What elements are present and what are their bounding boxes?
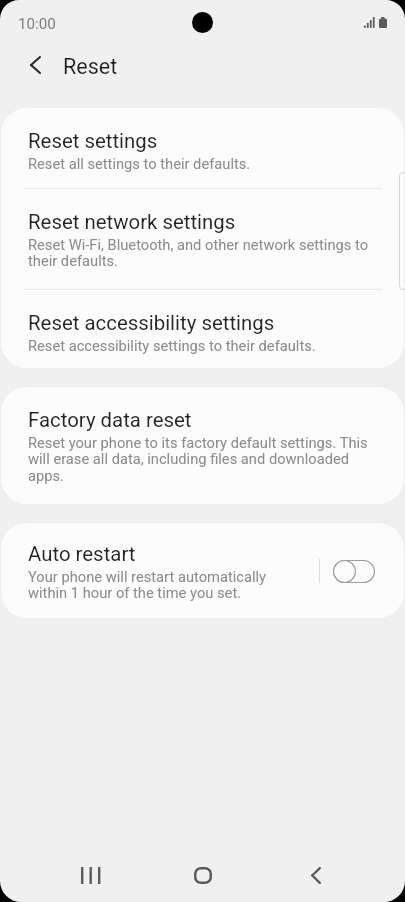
button[interactable]: Reset accessibility settings [1,290,404,368]
button[interactable]: Back [288,847,344,902]
button[interactable]: Factory data reset [1,387,404,504]
staticText: Auto restart [28,542,136,566]
staticText: Reset your phone to its factory default … [28,434,378,485]
staticText: Your phone will restart automatically wi… [28,568,294,602]
button[interactable]: Navigate up [11,41,59,89]
button[interactable]: Home [175,847,231,902]
staticText: Reset [63,54,118,79]
staticText: Factory data reset [28,408,192,432]
staticText: Reset all settings to their defaults. [28,155,251,172]
staticText: Reset network settings [28,210,236,234]
button[interactable]: Auto restart [1,523,404,618]
staticText: Reset accessibility settings to their de… [28,337,316,354]
button[interactable]: Auto restart switch, off [333,560,375,583]
button[interactable]: Recent apps [61,847,117,902]
staticText: Reset Wi-Fi, Bluetooth, and other networ… [28,236,378,270]
button[interactable]: Reset settings [1,108,404,189]
staticText: Reset settings [28,129,158,153]
staticText: Reset accessibility settings [28,311,275,335]
staticText: 10:00 [18,15,56,33]
button[interactable]: Reset network settings [1,189,404,290]
